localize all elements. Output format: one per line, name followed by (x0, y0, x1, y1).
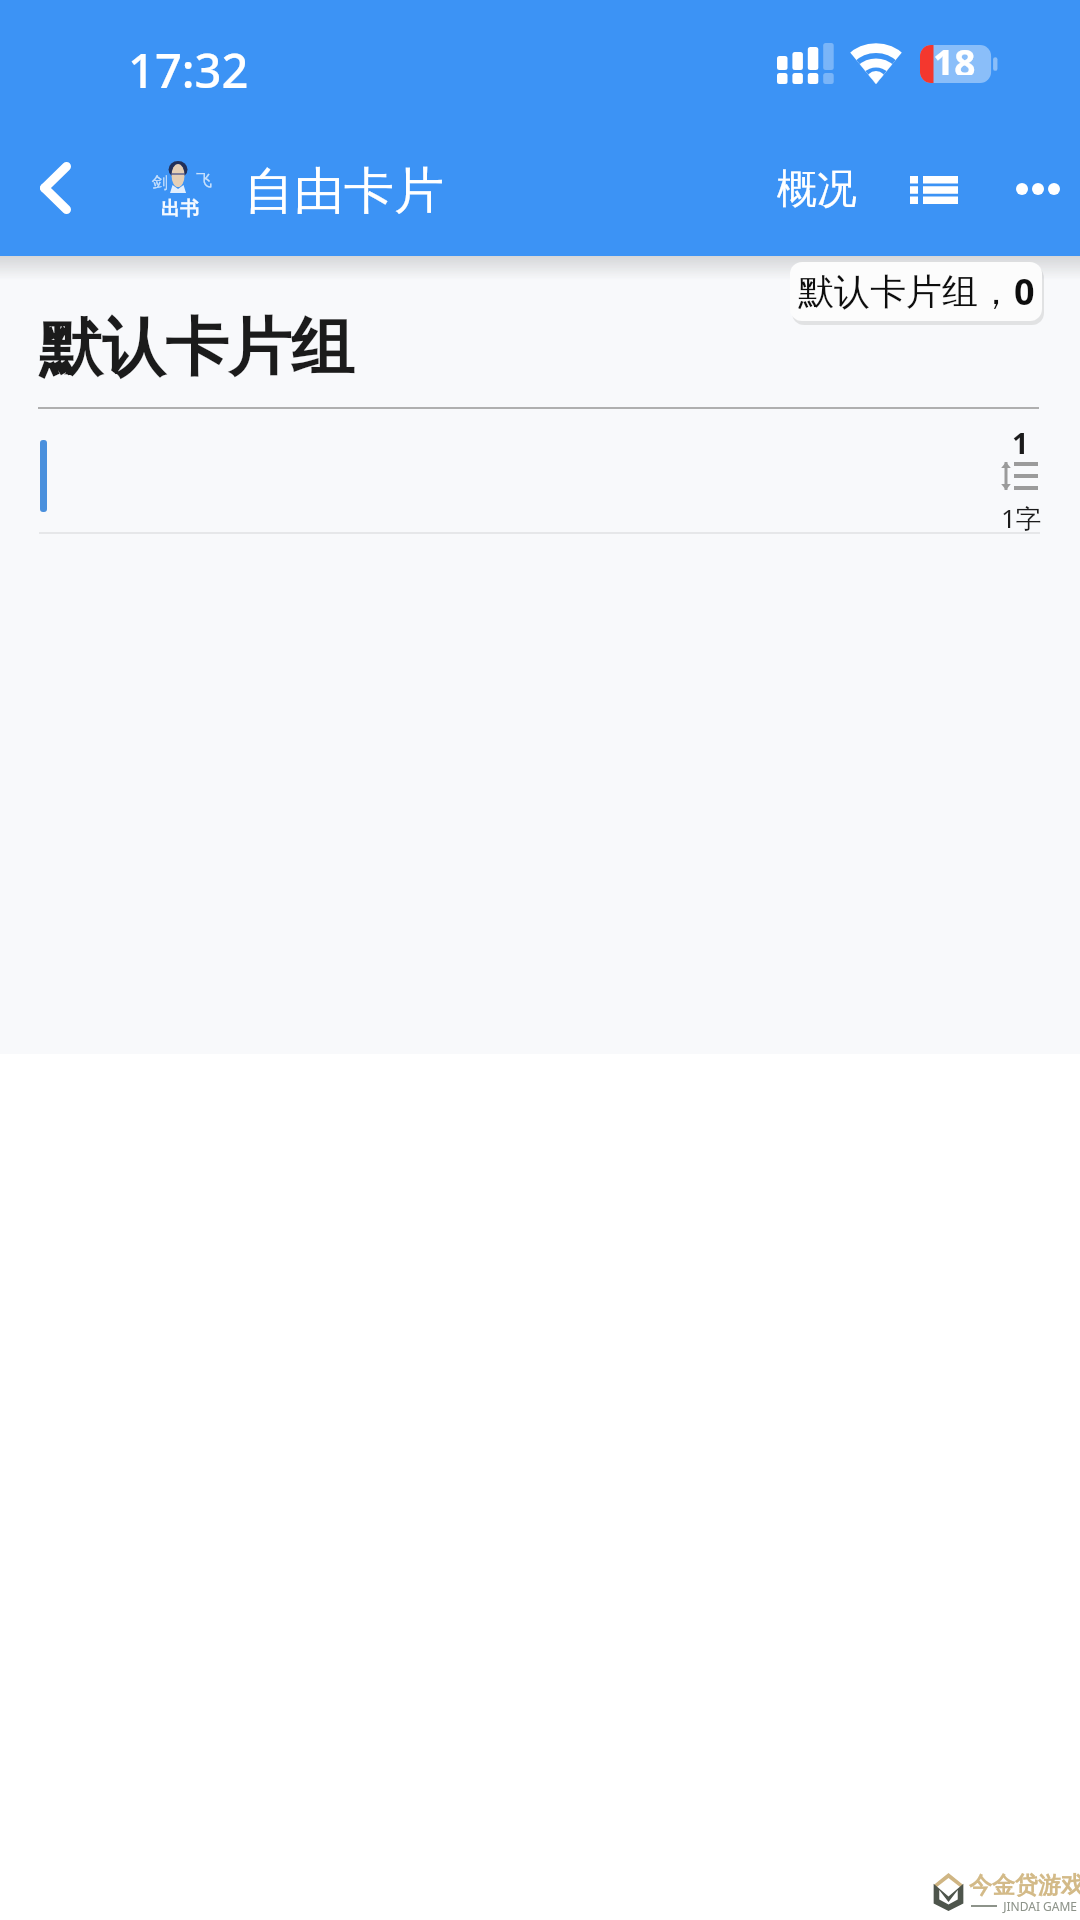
button[interactable]: 卡片 1 字 (0, 415, 1080, 540)
staticText: 自由卡片 (244, 160, 444, 223)
button[interactable]: 概况 (770, 142, 863, 234)
button[interactable]: 默认卡片组， (790, 262, 1042, 321)
staticText: 1 (1012, 423, 1029, 462)
staticText: 飞 (196, 171, 212, 191)
button[interactable]: Back (5, 138, 105, 238)
staticText: 默认卡片组 (39, 308, 354, 387)
staticText: 0 (1014, 267, 1035, 316)
staticText: 1字 (1001, 500, 1042, 536)
staticText: 剑 (152, 173, 168, 193)
staticText: 概况 (777, 163, 857, 213)
staticText: JINDAI GAME (997, 1898, 1080, 1914)
staticText: 17:32 (128, 38, 249, 102)
button[interactable]: List view (890, 146, 978, 234)
staticText: 今金贷游戏 (969, 1871, 1080, 1900)
staticText: 默认卡片组， (798, 269, 1014, 314)
staticText: 出书 (161, 197, 199, 221)
staticText: 18 (933, 37, 976, 75)
button[interactable]: More options (995, 145, 1080, 233)
